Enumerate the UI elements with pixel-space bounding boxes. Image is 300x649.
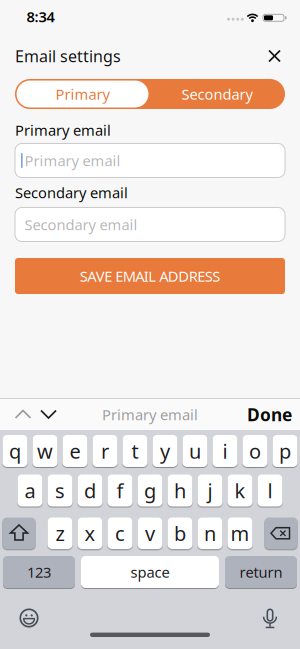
- button[interactable]: Done: [247, 403, 292, 426]
- staticText: c: [115, 520, 125, 547]
- staticText: s: [55, 477, 65, 504]
- button[interactable]: Next field: [40, 409, 57, 419]
- staticText: k: [234, 477, 245, 504]
- button[interactable]: space: [81, 556, 219, 588]
- staticText: space: [130, 562, 169, 582]
- staticText: d: [84, 477, 96, 504]
- staticText: l: [267, 477, 272, 504]
- button[interactable]: Secondary email: [14, 207, 285, 242]
- button[interactable]: e: [62, 435, 87, 467]
- button[interactable]: n: [197, 517, 222, 549]
- staticText: SAVE EMAIL ADDRESS: [80, 266, 220, 286]
- button[interactable]: r: [92, 435, 117, 467]
- staticText: h: [174, 477, 186, 504]
- staticText: e: [69, 438, 80, 464]
- staticText: b: [174, 520, 186, 547]
- button[interactable]: q: [2, 435, 27, 467]
- staticText: j: [207, 477, 212, 504]
- button[interactable]: i: [212, 435, 237, 467]
- button[interactable]: u: [182, 435, 207, 467]
- button[interactable]: a: [17, 474, 42, 506]
- staticText: t: [131, 438, 138, 464]
- button[interactable]: return: [225, 556, 297, 588]
- staticText: Primary email: [102, 405, 198, 424]
- button[interactable]: c: [107, 517, 132, 549]
- staticText: Done: [247, 403, 292, 426]
- button[interactable]: b: [167, 517, 192, 549]
- staticText: x: [84, 520, 95, 547]
- button[interactable]: d: [77, 474, 102, 506]
- button[interactable]: Primary email: [14, 143, 285, 178]
- button[interactable]: Delete: [264, 517, 297, 549]
- staticText: Secondary email: [15, 183, 128, 202]
- staticText: f: [116, 477, 123, 504]
- staticText: 8:34: [26, 7, 54, 26]
- button[interactable]: Secondary: [150, 79, 284, 109]
- button[interactable]: z: [47, 517, 72, 549]
- button[interactable]: o: [242, 435, 267, 467]
- staticText: Secondary email: [24, 215, 137, 234]
- staticText: m: [230, 520, 249, 547]
- button[interactable]: h: [167, 474, 192, 506]
- staticText: Email settings: [15, 45, 121, 67]
- staticText: y: [160, 438, 170, 464]
- button[interactable]: Shift: [2, 517, 35, 549]
- staticText: r: [101, 438, 109, 464]
- staticText: u: [189, 438, 201, 464]
- staticText: Primary: [55, 84, 109, 104]
- staticText: o: [249, 438, 261, 464]
- button[interactable]: k: [227, 474, 252, 506]
- button[interactable]: Emoji: [19, 608, 39, 628]
- staticText: return: [239, 562, 282, 582]
- button[interactable]: SAVE EMAIL ADDRESS: [15, 258, 285, 294]
- button[interactable]: f: [107, 474, 132, 506]
- button[interactable]: Dictation: [260, 606, 280, 628]
- staticText: Secondary: [181, 84, 252, 104]
- button[interactable]: Primary: [16, 80, 148, 107]
- staticText: a: [24, 477, 35, 504]
- staticText: 123: [27, 562, 51, 582]
- button[interactable]: t: [122, 435, 147, 467]
- staticText: z: [55, 520, 64, 547]
- button[interactable]: x: [77, 517, 102, 549]
- button[interactable]: y: [152, 435, 177, 467]
- staticText: p: [279, 438, 291, 464]
- button[interactable]: 123: [3, 556, 75, 588]
- button[interactable]: v: [137, 517, 162, 549]
- staticText: q: [9, 438, 21, 464]
- button[interactable]: l: [257, 474, 282, 506]
- button[interactable]: Close: [264, 46, 284, 66]
- staticText: v: [145, 520, 155, 547]
- button[interactable]: m: [227, 517, 252, 549]
- staticText: Primary email: [24, 151, 120, 170]
- staticText: g: [144, 477, 156, 504]
- staticText: i: [222, 438, 227, 464]
- button[interactable]: j: [197, 474, 222, 506]
- button[interactable]: g: [137, 474, 162, 506]
- button[interactable]: w: [32, 435, 57, 467]
- staticText: n: [204, 520, 216, 547]
- button[interactable]: Previous field: [14, 409, 31, 419]
- button[interactable]: s: [47, 474, 72, 506]
- staticText: w: [37, 438, 53, 464]
- staticText: Primary email: [15, 120, 111, 140]
- button[interactable]: p: [272, 435, 297, 467]
